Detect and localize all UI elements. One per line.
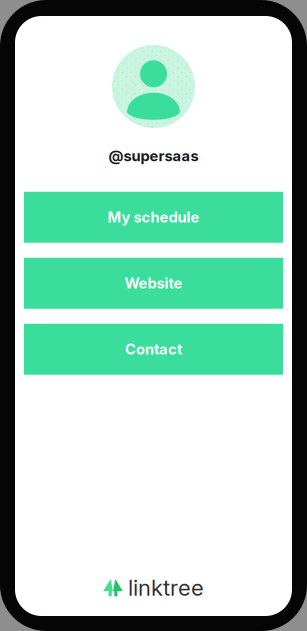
button[interactable]: Contact xyxy=(24,324,283,375)
staticText: My schedule xyxy=(107,208,199,226)
staticText: linktree xyxy=(128,574,204,601)
staticText: Contact xyxy=(125,340,182,358)
staticText: Website xyxy=(124,274,182,292)
staticText: @supersaas xyxy=(108,147,198,165)
button[interactable]: My schedule xyxy=(24,192,283,243)
button[interactable]: Website xyxy=(24,258,283,309)
